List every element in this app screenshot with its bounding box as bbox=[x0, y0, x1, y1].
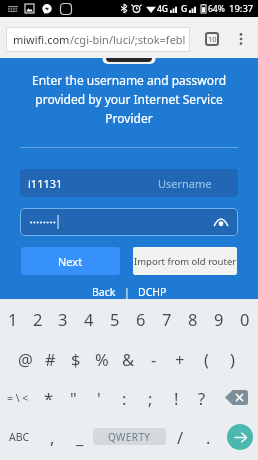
staticText: 0 bbox=[240, 308, 250, 330]
staticText: 4G bbox=[157, 3, 169, 15]
staticText: 19:37 bbox=[229, 2, 254, 15]
staticText: % bbox=[95, 348, 109, 370]
button[interactable]: 3 bbox=[50, 299, 76, 339]
staticText: / bbox=[177, 426, 184, 448]
button[interactable]: _ bbox=[67, 417, 93, 456]
staticText: * bbox=[44, 387, 54, 409]
button[interactable]: DCHP bbox=[138, 285, 167, 299]
button[interactable]: 1 bbox=[0, 299, 25, 339]
staticText: _ bbox=[76, 426, 84, 448]
button[interactable]: miwifi.com bbox=[6, 27, 190, 52]
staticText: 9 bbox=[214, 308, 224, 330]
staticText: : bbox=[122, 387, 127, 409]
staticText: Next bbox=[58, 254, 83, 269]
button[interactable]: 2 bbox=[25, 299, 50, 339]
staticText: + bbox=[175, 348, 185, 370]
staticText: Enter the username and password provided… bbox=[0, 72, 258, 126]
button[interactable]: i11131 bbox=[20, 169, 238, 197]
staticText: /cgi-bin/luci/;stok=febl bbox=[70, 32, 186, 47]
staticText: 2 bbox=[33, 308, 43, 330]
button[interactable]: " bbox=[61, 378, 86, 417]
button[interactable]: 7 bbox=[154, 299, 180, 339]
staticText: ? bbox=[198, 387, 206, 409]
staticText: 3 bbox=[58, 308, 68, 330]
button[interactable]: 6 bbox=[128, 299, 154, 339]
staticText: @ bbox=[18, 348, 33, 370]
button[interactable]: ( bbox=[193, 339, 219, 378]
staticText: miwifi.com bbox=[13, 32, 70, 47]
button[interactable]: , bbox=[38, 417, 67, 456]
staticText: 6 bbox=[136, 308, 146, 330]
staticText: ABC bbox=[9, 430, 30, 444]
staticText: ; bbox=[148, 387, 153, 409]
staticText: , bbox=[50, 426, 55, 448]
staticText: " bbox=[70, 387, 77, 409]
staticText: - bbox=[151, 348, 157, 370]
button[interactable]: ! bbox=[163, 378, 189, 417]
button[interactable]: Tabs bbox=[205, 32, 219, 46]
button[interactable]: Show password bbox=[213, 214, 229, 230]
staticText: Username bbox=[158, 176, 212, 191]
button[interactable]: # bbox=[38, 339, 63, 378]
staticText: ) bbox=[230, 348, 235, 370]
button[interactable]: 9 bbox=[206, 299, 232, 339]
staticText: Import from old router bbox=[134, 255, 237, 268]
staticText: DCHP bbox=[138, 285, 167, 299]
button[interactable]: 5 bbox=[102, 299, 128, 339]
staticText: 1 bbox=[8, 308, 18, 330]
button[interactable]: Back bbox=[92, 285, 116, 299]
button[interactable]: + bbox=[167, 339, 193, 378]
button[interactable]: - bbox=[141, 339, 167, 378]
button[interactable]: . bbox=[195, 417, 222, 456]
staticText: & bbox=[122, 348, 135, 370]
button[interactable]: Backspace bbox=[215, 378, 258, 417]
staticText: 4 bbox=[84, 308, 94, 330]
staticText: i11131 bbox=[28, 176, 63, 191]
button[interactable]: = \ < bbox=[0, 378, 36, 417]
button[interactable]: ? bbox=[189, 378, 215, 417]
staticText: G bbox=[181, 3, 188, 15]
staticText: ' bbox=[97, 387, 101, 409]
staticText: 10 bbox=[208, 34, 217, 44]
button[interactable]: ' bbox=[86, 378, 111, 417]
button[interactable]: Next bbox=[21, 247, 120, 275]
button[interactable]: QWERTY bbox=[93, 428, 166, 445]
staticText: = \ < bbox=[7, 391, 29, 405]
button[interactable]: ) bbox=[219, 339, 245, 378]
button[interactable]: & bbox=[115, 339, 141, 378]
staticText: ! bbox=[174, 387, 179, 409]
staticText: Back bbox=[92, 285, 116, 299]
button[interactable]: ABC bbox=[0, 417, 38, 456]
button[interactable]: More options bbox=[232, 30, 250, 48]
staticText: 8 bbox=[188, 308, 198, 330]
button[interactable]: Show password bbox=[20, 208, 238, 236]
button[interactable]: @ bbox=[13, 339, 38, 378]
staticText: # bbox=[45, 348, 56, 370]
button[interactable]: / bbox=[166, 417, 195, 456]
button[interactable]: : bbox=[111, 378, 137, 417]
staticText: 64% bbox=[208, 3, 225, 15]
staticText: 7 bbox=[162, 308, 172, 330]
button[interactable]: Import from old router bbox=[133, 247, 237, 275]
button[interactable]: 4 bbox=[76, 299, 102, 339]
button[interactable]: % bbox=[89, 339, 115, 378]
button[interactable]: Enter bbox=[222, 417, 258, 456]
button[interactable]: * bbox=[36, 378, 61, 417]
staticText: | bbox=[124, 285, 130, 299]
button[interactable]: 0 bbox=[232, 299, 258, 339]
staticText: . bbox=[206, 426, 211, 448]
staticText: $ bbox=[71, 348, 81, 370]
button[interactable]: 8 bbox=[180, 299, 206, 339]
staticText: QWERTY bbox=[108, 430, 151, 444]
button[interactable]: ; bbox=[137, 378, 163, 417]
staticText: ( bbox=[204, 348, 209, 370]
staticText: 5 bbox=[110, 308, 120, 330]
button[interactable]: $ bbox=[63, 339, 89, 378]
